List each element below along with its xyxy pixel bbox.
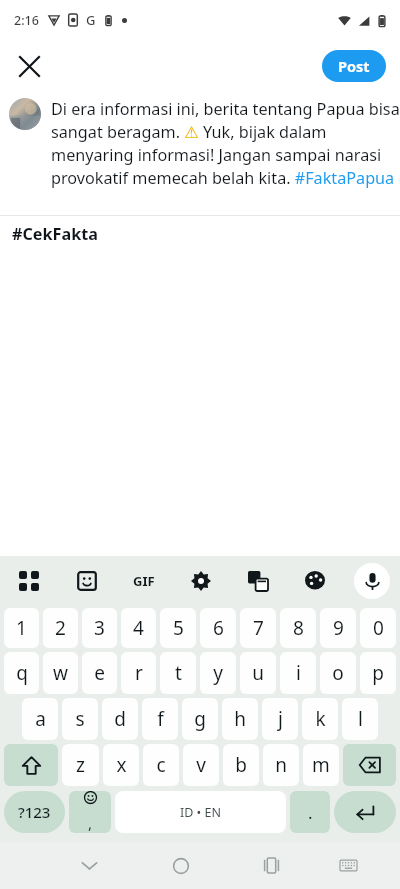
staticText: u <box>252 660 264 686</box>
staticText: c <box>156 752 166 778</box>
button[interactable]: e <box>82 652 117 694</box>
staticText: G <box>86 11 96 29</box>
button[interactable]: l <box>342 698 378 740</box>
button[interactable]: b <box>223 744 259 786</box>
button[interactable]: f <box>142 698 178 740</box>
button[interactable]: Back <box>61 842 118 889</box>
staticText: 0 <box>373 615 384 641</box>
staticText: 4 <box>133 615 144 641</box>
button[interactable]: Home <box>152 842 209 889</box>
button[interactable]: Apps <box>0 556 58 606</box>
staticText: #CekFakta <box>12 223 98 245</box>
button[interactable]: 9 <box>320 608 356 648</box>
staticText: a <box>35 706 46 732</box>
button[interactable]: Switch keyboard <box>320 842 377 889</box>
staticText: 7 <box>253 615 264 641</box>
staticText: n <box>275 752 287 778</box>
button[interactable]: q <box>4 652 39 694</box>
staticText: v <box>196 752 206 778</box>
button[interactable]: z <box>62 744 99 786</box>
button[interactable]: Profile photo <box>9 98 41 130</box>
staticText: 5 <box>173 615 184 641</box>
button[interactable]: Translate <box>229 556 286 606</box>
staticText: ID • EN <box>180 804 222 821</box>
staticText: q <box>16 660 28 686</box>
staticText: g <box>194 706 206 732</box>
button[interactable]: ID • EN <box>115 791 286 833</box>
staticText: 1 <box>16 615 27 641</box>
button[interactable]: c <box>143 744 179 786</box>
button[interactable]: j <box>262 698 298 740</box>
button[interactable]: g <box>182 698 218 740</box>
button[interactable]: y <box>200 652 236 694</box>
button[interactable]: GIF <box>115 556 172 606</box>
button[interactable]: i <box>280 652 316 694</box>
staticText: 8 <box>293 615 304 641</box>
staticText: j <box>278 706 283 732</box>
staticText: r <box>135 660 143 686</box>
staticText: y <box>213 660 223 686</box>
staticText: p <box>372 660 384 686</box>
button[interactable]: a <box>22 698 58 740</box>
button[interactable]: 0 <box>360 608 396 648</box>
button[interactable]: Stickers <box>58 556 115 606</box>
button[interactable]: k <box>302 698 338 740</box>
button[interactable]: Settings <box>172 556 229 606</box>
button[interactable]: 8 <box>280 608 316 648</box>
button[interactable]: 5 <box>160 608 196 648</box>
button[interactable]: h <box>222 698 258 740</box>
button[interactable]: Recent apps <box>243 842 300 889</box>
button[interactable]: Themes <box>286 556 343 606</box>
button[interactable]: Enter <box>334 791 396 833</box>
button[interactable]: r <box>121 652 156 694</box>
button[interactable]: Voice input <box>343 556 400 606</box>
button[interactable]: 2 <box>43 608 78 648</box>
button[interactable]: p <box>360 652 396 694</box>
button[interactable]: m <box>303 744 339 786</box>
staticText: Di era informasi ini, berita tentang Pap… <box>51 98 400 189</box>
button[interactable]: t <box>160 652 196 694</box>
button[interactable]: d <box>102 698 138 740</box>
button[interactable]: . <box>290 791 330 833</box>
staticText: o <box>332 660 344 686</box>
staticText: l <box>358 706 363 732</box>
staticText: 2 <box>55 615 66 641</box>
staticText: 9 <box>333 615 344 641</box>
button[interactable]: s <box>62 698 98 740</box>
staticText: . <box>308 801 313 824</box>
button[interactable]: Backspace <box>343 744 396 786</box>
button[interactable]: 3 <box>82 608 117 648</box>
staticText: b <box>235 752 247 778</box>
staticText: f <box>157 706 164 732</box>
staticText: i <box>296 660 301 686</box>
staticText: s <box>75 706 85 732</box>
staticText: 2:16 <box>14 12 39 29</box>
button[interactable]: Post <box>322 50 386 82</box>
button[interactable]: w <box>43 652 78 694</box>
button[interactable]: 4 <box>121 608 156 648</box>
staticText: d <box>114 706 126 732</box>
staticText: z <box>76 752 85 778</box>
staticText: h <box>234 706 246 732</box>
button[interactable]: o <box>320 652 356 694</box>
button[interactable]: 6 <box>200 608 236 648</box>
button[interactable]: 1 <box>4 608 39 648</box>
staticText: w <box>53 660 68 686</box>
button[interactable]: u <box>240 652 276 694</box>
button[interactable]: n <box>263 744 299 786</box>
button[interactable]: x <box>103 744 139 786</box>
staticText: GIF <box>133 572 155 590</box>
button[interactable]: Shift <box>4 744 58 786</box>
button[interactable]: Emoji and comma <box>69 791 111 833</box>
button[interactable]: ?123 <box>4 791 65 833</box>
staticText: 6 <box>213 615 224 641</box>
button[interactable]: v <box>183 744 219 786</box>
staticText: t <box>175 660 182 686</box>
staticText: 3 <box>94 615 105 641</box>
staticText: e <box>94 660 105 686</box>
staticText: x <box>116 752 127 778</box>
staticText: k <box>315 706 326 732</box>
button[interactable]: 7 <box>240 608 276 648</box>
staticText: , <box>88 813 93 833</box>
button[interactable]: Close <box>8 45 50 87</box>
